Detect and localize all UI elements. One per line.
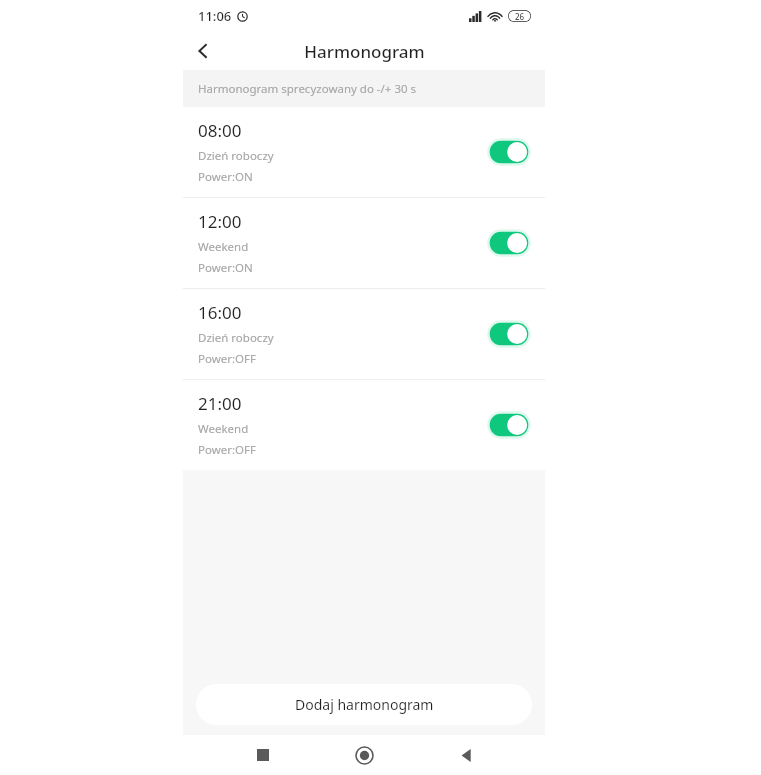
staticText: Dzień roboczy	[198, 330, 274, 346]
staticText: Harmonogram	[304, 40, 425, 63]
staticText: 26	[515, 11, 525, 22]
staticText: 11:06	[198, 7, 232, 25]
button[interactable]: Back	[183, 32, 223, 70]
button[interactable]: Toggle schedule	[486, 229, 532, 257]
button[interactable]: Dodaj harmonogram	[196, 684, 532, 725]
staticText: Weekend	[198, 239, 249, 255]
staticText: Power:OFF	[198, 351, 256, 367]
staticText: Dodaj harmonogram	[295, 695, 434, 714]
staticText: Weekend	[198, 421, 249, 437]
button[interactable]: Recent apps	[241, 735, 285, 775]
staticText: Power:ON	[198, 260, 253, 276]
staticText: Power:OFF	[198, 442, 256, 458]
button[interactable]: Home	[342, 735, 386, 775]
staticText: Dzień roboczy	[198, 148, 274, 164]
staticText: 21:00	[198, 392, 242, 415]
staticText: Power:ON	[198, 169, 253, 185]
button[interactable]: Toggle schedule	[486, 320, 532, 348]
staticText: 08:00	[198, 119, 242, 142]
staticText: 12:00	[198, 210, 242, 233]
staticText: 16:00	[198, 301, 242, 324]
button[interactable]: 16:00	[183, 289, 545, 379]
button[interactable]: Toggle schedule	[486, 138, 532, 166]
button[interactable]: Toggle schedule	[486, 411, 532, 439]
button[interactable]: 08:00	[183, 107, 545, 197]
staticText: Harmonogram sprecyzowany do -/+ 30 s	[198, 81, 417, 97]
button[interactable]: 12:00	[183, 198, 545, 288]
button[interactable]: Back	[444, 735, 488, 775]
button[interactable]: 21:00	[183, 380, 545, 470]
